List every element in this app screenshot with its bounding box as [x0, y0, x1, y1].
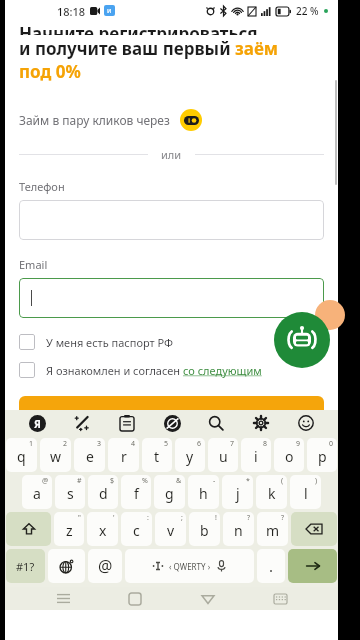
staticText: 2	[63, 439, 68, 449]
staticText: 18:18	[57, 4, 86, 19]
staticText: s	[67, 484, 74, 503]
button[interactable]: Search	[203, 410, 229, 436]
button[interactable]	[19, 278, 324, 318]
button[interactable]: Chat	[315, 300, 345, 330]
button[interactable]: Yandex assistant	[24, 410, 50, 436]
staticText: x	[99, 521, 107, 540]
staticText: y	[186, 447, 194, 466]
button[interactable]: Translate	[159, 410, 185, 436]
staticText: i	[254, 447, 258, 466]
staticText: !	[215, 513, 217, 523]
staticText: v	[167, 521, 175, 540]
staticText: d	[99, 484, 108, 503]
button[interactable]: x	[87, 512, 118, 546]
button[interactable]: Enter	[288, 549, 337, 583]
staticText: u	[219, 447, 228, 466]
staticText: @	[98, 555, 113, 577]
button[interactable]: d	[88, 475, 118, 509]
button[interactable]: ‹ QWERTY ›	[125, 549, 254, 583]
button[interactable]: t	[142, 438, 172, 472]
button[interactable]: Settings	[248, 410, 274, 436]
staticText: #1?	[16, 559, 35, 574]
button[interactable]: Clipboard	[114, 410, 140, 436]
staticText: l	[304, 484, 308, 503]
staticText: '	[113, 513, 115, 523]
button[interactable]: g	[154, 475, 185, 509]
staticText: "	[78, 513, 81, 523]
staticText: 6	[197, 439, 202, 449]
staticText: a	[33, 484, 41, 503]
staticText: 22 %	[296, 4, 319, 18]
button[interactable]: Я ознакомлен и согласен со следующим	[19, 362, 324, 378]
button[interactable]: Change language	[48, 549, 85, 583]
staticText: *	[246, 476, 250, 486]
button[interactable]: c	[121, 512, 152, 546]
button[interactable]: b	[189, 512, 220, 546]
staticText: z	[66, 521, 73, 540]
staticText: (	[281, 476, 284, 486]
staticText: Начните регистрироваться,	[19, 22, 263, 35]
button[interactable]: z	[54, 512, 84, 546]
staticText: m	[266, 521, 280, 540]
button[interactable]: f	[121, 475, 151, 509]
button[interactable]: Back	[194, 587, 222, 610]
button[interactable]: s	[55, 475, 85, 509]
button[interactable]: У меня есть паспорт РФ	[19, 334, 324, 350]
button[interactable]: p	[307, 438, 337, 472]
button[interactable]: a	[22, 475, 52, 509]
staticText: f	[134, 484, 139, 503]
button[interactable]: m	[257, 512, 288, 546]
staticText: -	[213, 476, 216, 486]
staticText: Я ознакомлен и согласен со следующим	[46, 363, 262, 378]
button[interactable]: Backspace	[291, 512, 337, 546]
button[interactable]: o	[274, 438, 304, 472]
staticText: e	[86, 447, 94, 466]
staticText: o	[285, 447, 294, 466]
staticText: Email	[19, 257, 48, 272]
staticText: ?	[281, 513, 285, 523]
button[interactable]: Period	[257, 549, 285, 583]
button[interactable]: y	[175, 438, 205, 472]
staticText: #	[77, 476, 82, 486]
button[interactable]: Recents	[49, 587, 77, 610]
staticText: )	[315, 476, 318, 486]
staticText: или	[161, 147, 182, 162]
staticText: Займ в пару кликов через	[19, 112, 170, 128]
button[interactable]: Home	[121, 587, 149, 610]
staticText: g	[165, 484, 174, 503]
staticText: c	[133, 521, 140, 540]
staticText: n	[234, 521, 243, 540]
staticText: Телефон	[19, 179, 65, 194]
button[interactable]: #1?	[6, 549, 45, 583]
staticText: 4	[131, 439, 136, 449]
button[interactable]: r	[108, 438, 139, 472]
button[interactable]: Yandex ID	[180, 109, 202, 131]
button[interactable]: h	[188, 475, 219, 509]
button[interactable]: n	[223, 512, 254, 546]
button[interactable]: l	[290, 475, 321, 509]
button[interactable]: At sign	[88, 549, 122, 583]
button[interactable]: q	[6, 438, 37, 472]
staticText: t	[154, 447, 160, 466]
staticText: p	[318, 447, 327, 466]
button[interactable]: Support chat	[274, 312, 330, 368]
staticText: .	[269, 556, 274, 576]
staticText: j	[236, 484, 240, 503]
button[interactable]: Shift	[6, 512, 51, 546]
button[interactable]: j	[222, 475, 253, 509]
staticText: и получите ваш первый заём под 0%	[19, 37, 279, 83]
button[interactable]: Hide keyboard	[266, 587, 294, 610]
staticText: и	[107, 6, 112, 16]
button[interactable]: Emoji	[293, 410, 319, 436]
button[interactable]: k	[256, 475, 287, 509]
staticText: ?	[247, 513, 251, 523]
button[interactable]: w	[40, 438, 71, 472]
button[interactable]: Magic text	[69, 410, 95, 436]
button[interactable]: u	[208, 438, 238, 472]
button[interactable]	[19, 396, 324, 430]
button[interactable]: v	[155, 512, 186, 546]
button[interactable]	[19, 200, 324, 240]
button[interactable]: e	[74, 438, 105, 472]
button[interactable]: i	[241, 438, 271, 472]
staticText: %	[142, 476, 148, 486]
